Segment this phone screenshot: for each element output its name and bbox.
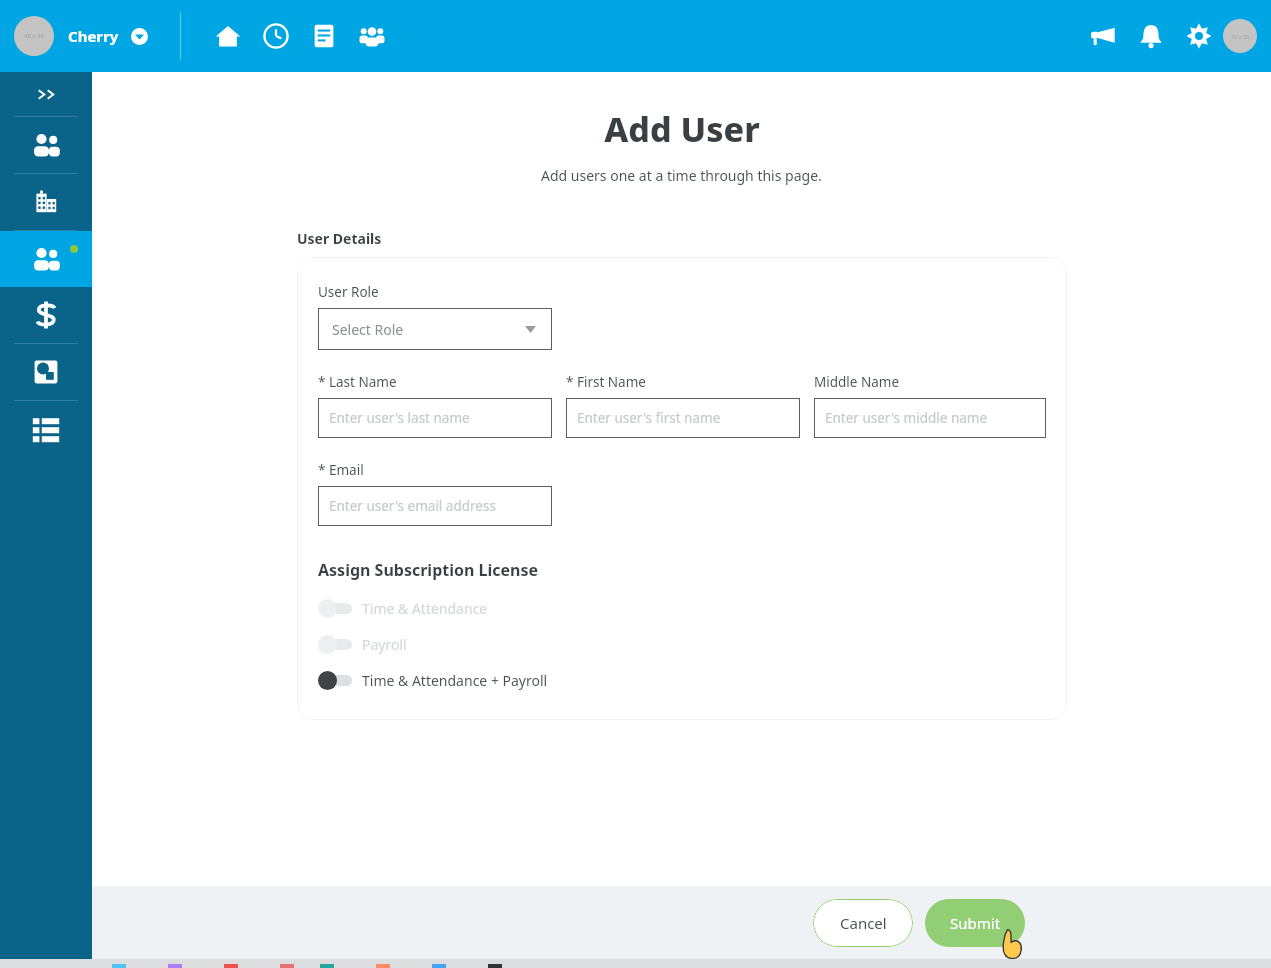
button[interactable]: Payroll [318, 634, 407, 654]
button[interactable]: Menu item [0, 117, 92, 173]
staticText: 30 x 30 [1231, 33, 1250, 40]
staticText: Add users one at a time through this pag… [541, 166, 822, 185]
button[interactable]: Cancel [813, 899, 913, 947]
button[interactable]: Menu item [0, 401, 92, 457]
button[interactable]: Reports [300, 8, 348, 64]
staticText: * First Name [566, 373, 646, 391]
button[interactable]: Time & Attendance + Payroll [318, 670, 548, 690]
button[interactable]: Settings [1175, 8, 1223, 64]
button[interactable]: Announcements [1079, 8, 1127, 64]
button[interactable]: Home [204, 8, 252, 64]
staticText: Submit [950, 913, 1001, 933]
staticText: Add User [604, 106, 760, 152]
button[interactable]: Expand menu [0, 72, 92, 116]
staticText: * Last Name [318, 373, 397, 391]
button[interactable]: Submit [925, 899, 1025, 947]
staticText: 48 x 48 [24, 32, 45, 40]
staticText: Enter user's middle name [825, 409, 988, 427]
staticText: Payroll [362, 635, 407, 654]
staticText: Time & Attendance + Payroll [362, 671, 548, 690]
staticText: Cherry [68, 26, 119, 46]
button[interactable]: Select Role [318, 308, 552, 350]
staticText: User Role [318, 283, 379, 301]
button[interactable]: Menu item [0, 344, 92, 400]
button[interactable]: Enter user's last name [318, 398, 552, 438]
button[interactable]: People [348, 8, 396, 64]
button[interactable]: Enter user's first name [566, 398, 800, 438]
button[interactable]: Menu item [0, 231, 92, 287]
staticText: Middle Name [814, 373, 900, 391]
button[interactable]: 48 x 48 [14, 16, 148, 56]
button[interactable]: Profile [1223, 19, 1257, 53]
staticText: Select Role [332, 320, 404, 339]
button[interactable]: Menu item [0, 174, 92, 230]
staticText: Cancel [840, 913, 887, 933]
staticText: * Email [318, 461, 364, 479]
staticText: Time & Attendance [362, 599, 488, 618]
button[interactable]: Menu item [0, 287, 92, 343]
button[interactable]: Time [252, 8, 300, 64]
button[interactable]: Time & Attendance [318, 598, 488, 618]
button[interactable]: Enter user's email address [318, 486, 552, 526]
staticText: Enter user's first name [577, 409, 721, 427]
button[interactable]: Enter user's middle name [814, 398, 1046, 438]
staticText: Enter user's last name [329, 409, 470, 427]
staticText: User Details [297, 229, 382, 248]
staticText: Assign Subscription License [318, 559, 539, 581]
other: Open account menu [131, 28, 148, 45]
staticText: Enter user's email address [329, 497, 496, 515]
button[interactable]: Notifications [1127, 8, 1175, 64]
